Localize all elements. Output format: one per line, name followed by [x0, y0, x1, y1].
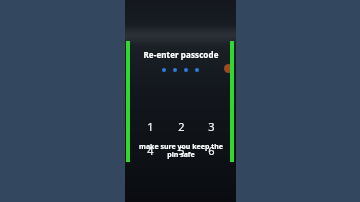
- staticText: 2: [178, 119, 185, 132]
- button[interactable]: 1: [139, 119, 161, 132]
- staticText: 3: [208, 119, 215, 132]
- staticText: make sure you keep the pin safe: [139, 142, 223, 159]
- other: Pointer: [224, 64, 233, 73]
- button[interactable]: 2: [170, 119, 192, 132]
- staticText: Re-enter passcode: [143, 49, 219, 60]
- button[interactable]: 6: [200, 143, 222, 156]
- staticText: 4: [147, 143, 154, 156]
- button[interactable]: 4: [139, 143, 161, 156]
- button[interactable]: 5: [170, 143, 192, 156]
- staticText: 5: [178, 143, 185, 156]
- staticText: 1: [147, 119, 154, 132]
- staticText: 6: [208, 143, 215, 156]
- button[interactable]: 3: [200, 119, 222, 132]
